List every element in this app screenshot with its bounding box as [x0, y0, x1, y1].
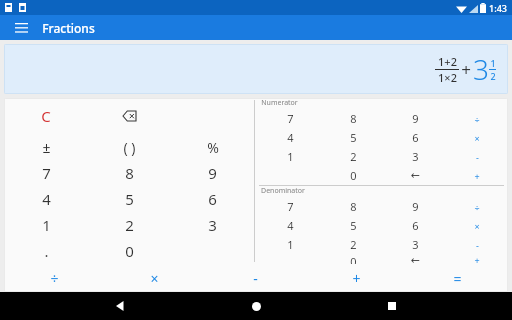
- button[interactable]: 9: [384, 197, 446, 216]
- button[interactable]: ←: [384, 166, 446, 185]
- button[interactable]: 3: [384, 147, 446, 166]
- staticText: 0: [125, 241, 134, 261]
- button[interactable]: 4: [259, 216, 322, 235]
- staticText: 8: [350, 199, 357, 214]
- button[interactable]: C: [4, 98, 88, 134]
- button[interactable]: +: [306, 264, 407, 292]
- button[interactable]: 1: [259, 147, 322, 166]
- staticText: 5: [125, 189, 134, 209]
- button[interactable]: 8: [322, 109, 384, 128]
- button[interactable]: 8: [88, 160, 171, 186]
- button[interactable]: 6: [171, 186, 254, 212]
- button[interactable]: -: [205, 264, 306, 292]
- staticText: ←: [410, 254, 420, 264]
- staticText: 7: [287, 111, 294, 126]
- button[interactable]: 2: [322, 235, 384, 254]
- staticText: 3: [412, 149, 419, 164]
- staticText: 1: [287, 237, 294, 252]
- button[interactable]: 3: [171, 212, 254, 238]
- staticText: 0: [350, 254, 357, 264]
- staticText: 9: [412, 199, 419, 214]
- button[interactable]: +: [446, 254, 508, 264]
- button[interactable]: 2: [88, 212, 171, 238]
- staticText: ÷: [474, 201, 480, 213]
- button[interactable]: ×: [446, 128, 508, 147]
- button[interactable]: ÷: [4, 264, 104, 292]
- staticText: 6: [412, 218, 419, 233]
- staticText: -: [253, 269, 258, 288]
- button[interactable]: ←: [384, 254, 446, 264]
- staticText: Denominator: [261, 186, 305, 196]
- button[interactable]: =: [407, 264, 508, 292]
- staticText: -: [476, 239, 479, 251]
- staticText: 2: [350, 237, 357, 252]
- button[interactable]: Home: [241, 292, 271, 320]
- button[interactable]: 0: [322, 166, 384, 185]
- staticText: ÷: [50, 269, 59, 288]
- staticText: +: [474, 254, 480, 264]
- button[interactable]: 7: [4, 160, 88, 186]
- button[interactable]: 0: [322, 254, 384, 264]
- staticText: 6: [412, 130, 419, 145]
- button[interactable]: Back: [106, 292, 136, 320]
- staticText: 2: [490, 70, 496, 82]
- button[interactable]: %: [171, 134, 254, 160]
- button[interactable]: ÷: [446, 109, 508, 128]
- button[interactable]: 7: [259, 197, 322, 216]
- button[interactable]: 6: [384, 216, 446, 235]
- button[interactable]: 5: [322, 128, 384, 147]
- button[interactable]: 2: [322, 147, 384, 166]
- staticText: 3: [208, 215, 217, 235]
- button[interactable]: Open navigation menu: [10, 17, 32, 39]
- staticText: 7: [42, 163, 51, 183]
- staticText: 8: [350, 111, 357, 126]
- staticText: 2: [350, 149, 357, 164]
- staticText: -: [476, 151, 479, 163]
- button[interactable]: 1: [4, 212, 88, 238]
- button[interactable]: 9: [171, 160, 254, 186]
- button[interactable]: 4: [4, 186, 88, 212]
- staticText: 6: [208, 189, 217, 209]
- button[interactable]: ±: [4, 134, 88, 160]
- staticText: 4: [42, 189, 51, 209]
- staticText: 1: [42, 215, 51, 235]
- button[interactable]: ÷: [446, 197, 508, 216]
- staticText: +: [352, 269, 361, 288]
- button[interactable]: ×: [446, 216, 508, 235]
- staticText: 1: [490, 57, 496, 69]
- button[interactable]: 5: [88, 186, 171, 212]
- button[interactable]: ( ): [88, 134, 171, 160]
- button[interactable]: 9: [384, 109, 446, 128]
- button[interactable]: ×: [104, 264, 205, 292]
- button[interactable]: 7: [259, 109, 322, 128]
- button[interactable]: 6: [384, 128, 446, 147]
- staticText: 4: [287, 130, 294, 145]
- staticText: 5: [350, 218, 357, 233]
- staticText: Fractions: [42, 20, 95, 36]
- staticText: 8: [125, 163, 134, 183]
- staticText: C: [41, 106, 51, 126]
- staticText: +: [474, 170, 480, 182]
- button[interactable]: 0: [88, 238, 171, 264]
- staticText: ÷: [474, 113, 480, 125]
- button[interactable]: +: [446, 166, 508, 185]
- button[interactable]: .: [4, 238, 88, 264]
- button[interactable]: Backspace: [88, 98, 171, 134]
- button[interactable]: Recent apps: [377, 292, 407, 320]
- staticText: ×: [474, 220, 480, 232]
- staticText: 1×2: [438, 70, 457, 85]
- button[interactable]: -: [446, 235, 508, 254]
- button[interactable]: 5: [322, 216, 384, 235]
- button[interactable]: -: [446, 147, 508, 166]
- staticText: 3: [412, 237, 419, 252]
- button[interactable]: 1+2: [4, 44, 508, 94]
- button[interactable]: 8: [322, 197, 384, 216]
- button[interactable]: 3: [384, 235, 446, 254]
- staticText: 1:43: [489, 2, 507, 14]
- button[interactable]: 4: [259, 128, 322, 147]
- staticText: %: [207, 138, 219, 157]
- button[interactable]: 1: [259, 235, 322, 254]
- staticText: 7: [287, 199, 294, 214]
- staticText: 2: [125, 215, 134, 235]
- staticText: Numerator: [261, 98, 298, 108]
